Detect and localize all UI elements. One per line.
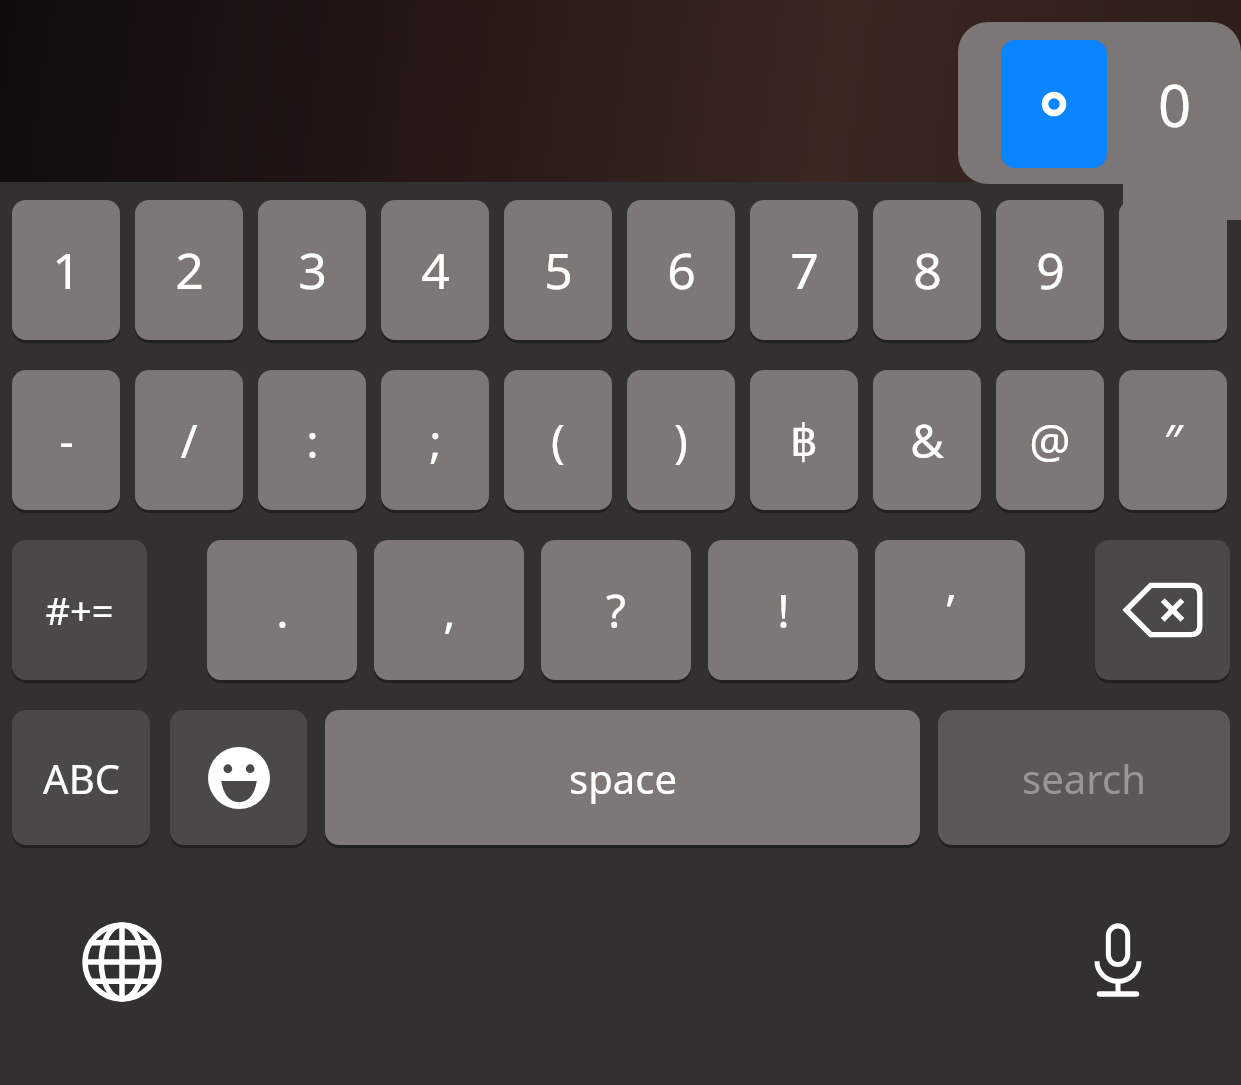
button[interactable]: @ xyxy=(996,370,1104,510)
staticText: ฿ xyxy=(790,415,818,466)
staticText: - xyxy=(59,410,74,470)
staticText: . xyxy=(276,579,289,642)
button[interactable]: & xyxy=(873,370,981,510)
staticText: ’ xyxy=(946,579,955,642)
button[interactable]: 1 xyxy=(12,200,120,340)
staticText: , xyxy=(443,579,456,642)
button[interactable]: 9 xyxy=(996,200,1104,340)
staticText: ? xyxy=(606,579,626,642)
staticText: ABC xyxy=(43,751,120,805)
button[interactable] xyxy=(958,22,1241,184)
button[interactable]: - xyxy=(12,370,120,510)
button[interactable]: search xyxy=(938,710,1230,845)
button[interactable]: 6 xyxy=(627,200,735,340)
button[interactable]: ฿ xyxy=(750,370,858,510)
button[interactable]: ABC xyxy=(12,710,150,845)
staticText: ) xyxy=(674,409,688,472)
staticText: 1 xyxy=(52,236,81,304)
staticText: : xyxy=(306,409,319,472)
button[interactable]: : xyxy=(258,370,366,510)
button[interactable]: / xyxy=(135,370,243,510)
staticText: ( xyxy=(551,409,565,472)
button[interactable]: Emoji xyxy=(170,710,307,845)
button[interactable]: 8 xyxy=(873,200,981,340)
button[interactable]: 3 xyxy=(258,200,366,340)
button[interactable]: Change keyboard language xyxy=(72,912,172,1012)
button[interactable]: . xyxy=(207,540,357,680)
staticText: / xyxy=(180,409,198,472)
staticText: 9 xyxy=(1036,236,1065,304)
button[interactable]: space xyxy=(325,710,920,845)
button[interactable]: ! xyxy=(708,540,858,680)
staticText: @ xyxy=(1029,409,1071,472)
staticText: 0 xyxy=(1158,65,1192,144)
button[interactable]: 7 xyxy=(750,200,858,340)
button[interactable]: ) xyxy=(627,370,735,510)
staticText: 6 xyxy=(667,236,696,304)
button[interactable]: 2 xyxy=(135,200,243,340)
button[interactable]: , xyxy=(374,540,524,680)
staticText: 8 xyxy=(913,236,942,304)
button[interactable]: ’ xyxy=(875,540,1025,680)
staticText: 7 xyxy=(790,236,819,304)
staticText: ″ xyxy=(1164,409,1183,472)
button[interactable]: 0 xyxy=(1125,40,1225,168)
staticText: search xyxy=(1022,751,1146,805)
button[interactable]: ( xyxy=(504,370,612,510)
button[interactable]: ? xyxy=(541,540,691,680)
button[interactable]: ; xyxy=(381,370,489,510)
button[interactable]: Voice input xyxy=(1068,912,1168,1012)
staticText: #+= xyxy=(45,584,114,636)
button[interactable]: ″ xyxy=(1119,370,1227,510)
staticText: 4 xyxy=(421,236,450,304)
staticText: ; xyxy=(429,409,442,472)
button[interactable]: Backspace xyxy=(1095,540,1230,680)
button[interactable]: 5 xyxy=(504,200,612,340)
staticText: 5 xyxy=(544,236,573,304)
staticText: space xyxy=(569,751,677,805)
staticText: & xyxy=(910,409,944,472)
staticText: 2 xyxy=(175,236,204,304)
staticText: 3 xyxy=(298,236,327,304)
staticText: ! xyxy=(777,579,790,642)
button[interactable]: Degree sign xyxy=(1001,40,1107,168)
button[interactable]: #+= xyxy=(12,540,147,680)
button[interactable]: 4 xyxy=(381,200,489,340)
button[interactable]: Zero xyxy=(1119,200,1227,340)
